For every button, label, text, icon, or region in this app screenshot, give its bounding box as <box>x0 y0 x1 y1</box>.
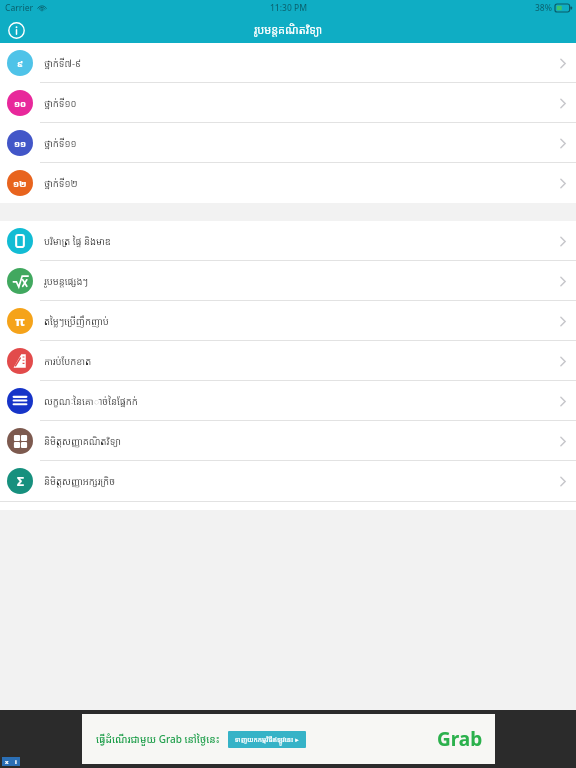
staticText: ថ្នាក់ទី៧-៩ <box>44 57 82 70</box>
button[interactable]: ១២ <box>0 163 576 203</box>
staticText: ថ្នាក់ទី១១ <box>44 137 77 150</box>
staticText: π <box>15 312 25 330</box>
button[interactable]: លក្ខណៈនៃគេាាច់នៃផ្នែកក់ <box>0 381 576 421</box>
button[interactable]: និមិត្តសញ្ញាគណិតវិទ្យា <box>0 421 576 461</box>
button[interactable]: ៩ <box>0 43 576 83</box>
staticText: រូបមន្តគណិតវិទ្យា <box>254 22 323 37</box>
staticText: បរិមាត្រ ផ្ទៃ និងមាឌ <box>44 235 111 248</box>
staticText: ទាញយកកម្មវិធីឥឡូវនេះ ▸ <box>235 735 299 744</box>
button[interactable]: ការប់បែកខាត <box>0 341 576 381</box>
staticText: ១២ <box>13 177 27 189</box>
button[interactable]: រូបមន្តផ្សេងៗ <box>0 261 576 301</box>
staticText: Grab <box>437 726 483 752</box>
staticText: i <box>15 758 17 766</box>
staticText: ១០ <box>14 97 27 109</box>
staticText: ៩ <box>17 57 24 69</box>
staticText: លក្ខណៈនៃគេាាច់នៃផ្នែកក់ <box>44 395 138 408</box>
staticText: ធ្វើដំណើរជាមួយ Grab នៅថ្ងៃនេះ <box>96 732 220 746</box>
staticText: និមិត្តសញ្ញាអក្សរក្រិច <box>44 475 115 488</box>
staticText: Σ <box>17 473 24 489</box>
button[interactable]: ទាញយកកម្មវិធីឥឡូវនេះ ▸ <box>235 735 299 744</box>
staticText: x <box>5 758 9 766</box>
staticText: តម្លៃៗប្រើញឹកញាប់ <box>44 315 109 328</box>
staticText: ការប់បែកខាត <box>44 355 92 368</box>
button[interactable]: ធ្វើដំណើរជាមួយ Grab នៅថ្ងៃនេះ <box>82 714 495 764</box>
staticText: Carrier <box>5 2 34 14</box>
staticText: 38% <box>535 2 552 14</box>
button[interactable]: បរិមាត្រ ផ្ទៃ និងមាឌ <box>0 221 576 261</box>
staticText: ថ្នាក់ទី១២ <box>44 177 78 190</box>
staticText: 11:30 PM <box>270 2 307 14</box>
button[interactable]: Info <box>4 18 28 42</box>
staticText: ថ្នាក់ទី១០ <box>44 97 77 110</box>
staticText: រូបមន្តផ្សេងៗ <box>44 275 89 288</box>
button[interactable]: ១១ <box>0 123 576 163</box>
button[interactable]: i <box>11 757 20 766</box>
button[interactable]: x <box>2 757 11 766</box>
button[interactable]: Σ <box>0 461 576 501</box>
staticText: និមិត្តសញ្ញាគណិតវិទ្យា <box>44 435 121 448</box>
staticText: ១១ <box>14 137 27 149</box>
button[interactable]: ១០ <box>0 83 576 123</box>
button[interactable]: π <box>0 301 576 341</box>
